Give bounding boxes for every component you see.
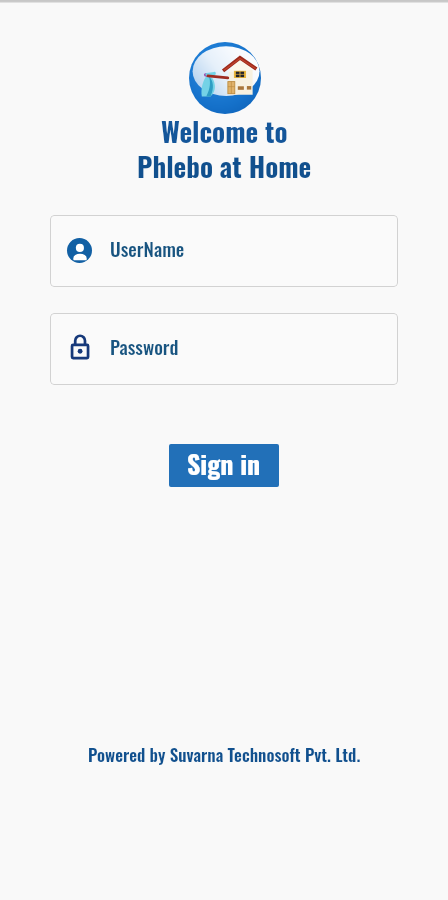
button[interactable]: Password xyxy=(50,313,398,385)
staticText: Password xyxy=(110,332,179,360)
staticText: UserName xyxy=(110,234,185,262)
staticText: Welcome to xyxy=(161,111,288,151)
button[interactable]: UserName xyxy=(50,215,398,287)
button[interactable]: Sign in xyxy=(169,444,279,487)
other: Phlebo at Home logo xyxy=(189,42,261,114)
staticText: Sign in xyxy=(187,444,261,483)
staticText: Powered by Suvarna Technosoft Pvt. Ltd. xyxy=(88,742,361,767)
staticText: Phlebo at Home xyxy=(137,146,312,186)
